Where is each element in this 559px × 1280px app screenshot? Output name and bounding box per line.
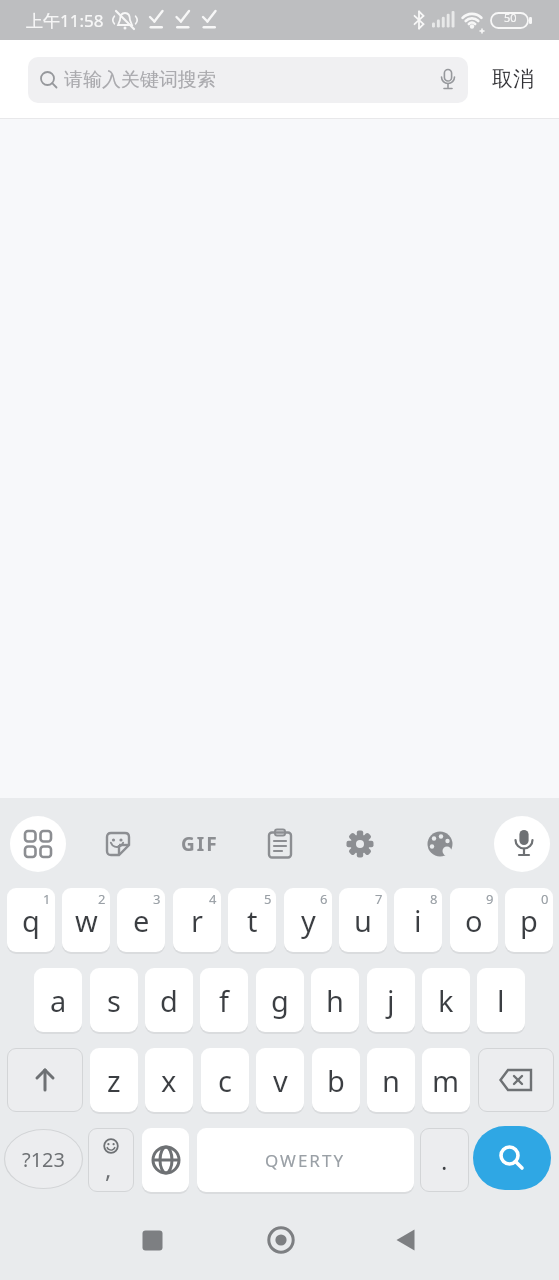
button[interactable]: 请输入关键词搜索 bbox=[28, 57, 468, 103]
staticText: n bbox=[382, 1061, 400, 1100]
staticText: 3 bbox=[153, 890, 161, 906]
button[interactable]: , bbox=[88, 1128, 134, 1192]
button[interactable] bbox=[130, 1218, 174, 1262]
staticText: 上午11:58 bbox=[26, 9, 104, 32]
button[interactable] bbox=[473, 1126, 551, 1190]
staticText: e bbox=[133, 901, 150, 940]
staticText: d bbox=[160, 981, 178, 1020]
button[interactable]: ?123 bbox=[4, 1129, 83, 1189]
staticText: f bbox=[219, 981, 229, 1020]
button[interactable]: o bbox=[450, 888, 498, 952]
staticText: u bbox=[354, 901, 372, 940]
staticText: a bbox=[50, 981, 67, 1020]
button[interactable]: p bbox=[505, 888, 553, 952]
button[interactable] bbox=[142, 1128, 189, 1192]
staticText: QWERTY bbox=[265, 1149, 346, 1172]
staticText: 7 bbox=[375, 890, 383, 906]
button[interactable]: s bbox=[90, 968, 138, 1032]
staticText: l bbox=[497, 981, 505, 1020]
staticText: . bbox=[441, 1144, 448, 1177]
button[interactable]: g bbox=[256, 968, 304, 1032]
button[interactable] bbox=[384, 1218, 428, 1262]
staticText: ?123 bbox=[22, 1146, 65, 1173]
button[interactable]: h bbox=[311, 968, 359, 1032]
staticText: c bbox=[218, 1061, 232, 1100]
staticText: b bbox=[327, 1061, 345, 1100]
staticText: 请输入关键词搜索 bbox=[64, 68, 216, 92]
staticText: 5 bbox=[264, 890, 272, 906]
button[interactable]: a bbox=[34, 968, 82, 1032]
button[interactable] bbox=[494, 816, 550, 872]
button[interactable]: m bbox=[422, 1048, 470, 1112]
button[interactable]: z bbox=[90, 1048, 138, 1112]
button[interactable] bbox=[478, 1048, 554, 1112]
staticText: 6 bbox=[320, 890, 328, 906]
button[interactable]: x bbox=[145, 1048, 193, 1112]
staticText: 9 bbox=[486, 890, 494, 906]
button[interactable]: t bbox=[228, 888, 276, 952]
button[interactable]: GIF bbox=[176, 816, 224, 872]
button[interactable]: r bbox=[173, 888, 221, 952]
button[interactable]: j bbox=[367, 968, 415, 1032]
button[interactable]: w bbox=[62, 888, 110, 952]
button[interactable]: y bbox=[284, 888, 332, 952]
button[interactable]: v bbox=[256, 1048, 304, 1112]
staticText: 0 bbox=[541, 890, 549, 906]
staticText: GIF bbox=[181, 831, 219, 857]
staticText: t bbox=[247, 901, 258, 940]
staticText: 取消 bbox=[492, 66, 534, 92]
button[interactable]: d bbox=[145, 968, 193, 1032]
button[interactable]: e bbox=[117, 888, 165, 952]
staticText: r bbox=[191, 901, 203, 940]
staticText: z bbox=[107, 1061, 121, 1100]
staticText: i bbox=[414, 901, 422, 940]
button[interactable] bbox=[7, 1048, 83, 1112]
staticText: 8 bbox=[430, 890, 438, 906]
button[interactable]: l bbox=[477, 968, 525, 1032]
button[interactable]: b bbox=[312, 1048, 360, 1112]
staticText: y bbox=[301, 901, 316, 940]
button[interactable] bbox=[259, 1218, 303, 1262]
staticText: j bbox=[387, 981, 395, 1020]
staticText: k bbox=[438, 981, 454, 1020]
staticText: p bbox=[520, 901, 538, 940]
button[interactable]: u bbox=[339, 888, 387, 952]
staticText: 4 bbox=[209, 890, 217, 906]
staticText: 50 bbox=[504, 10, 517, 25]
button[interactable]: 取消 bbox=[478, 40, 548, 118]
button[interactable]: . bbox=[420, 1128, 469, 1192]
button[interactable]: q bbox=[7, 888, 55, 952]
staticText: s bbox=[107, 981, 121, 1020]
button[interactable] bbox=[10, 816, 66, 872]
button[interactable]: i bbox=[394, 888, 442, 952]
button[interactable]: k bbox=[422, 968, 470, 1032]
staticText: w bbox=[75, 901, 98, 940]
staticText: v bbox=[273, 1061, 288, 1100]
staticText: q bbox=[22, 901, 40, 940]
staticText: 1 bbox=[43, 890, 51, 906]
staticText: , bbox=[105, 1152, 112, 1185]
staticText: h bbox=[326, 981, 344, 1020]
staticText: x bbox=[161, 1061, 177, 1100]
staticText: g bbox=[271, 981, 289, 1020]
staticText: 2 bbox=[98, 890, 106, 906]
button[interactable]: QWERTY bbox=[197, 1128, 414, 1192]
button[interactable]: c bbox=[201, 1048, 249, 1112]
button[interactable]: f bbox=[200, 968, 248, 1032]
staticText: o bbox=[465, 901, 483, 940]
button[interactable]: n bbox=[367, 1048, 415, 1112]
staticText: m bbox=[432, 1061, 460, 1100]
